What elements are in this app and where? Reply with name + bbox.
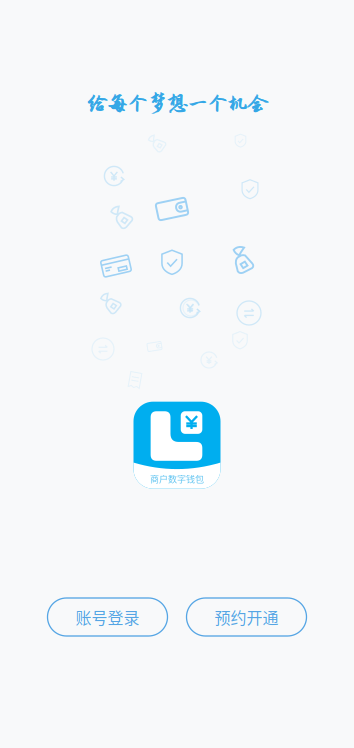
staticText: 账号登录	[75, 605, 139, 629]
button[interactable]: 账号登录	[47, 598, 167, 636]
staticText: 预约开通	[214, 605, 278, 629]
staticText: 商户数字钱包	[150, 472, 204, 485]
button[interactable]: 预约开通	[186, 598, 306, 636]
staticText: 给每个梦想一个机会	[87, 92, 267, 115]
staticText: 给每个梦想一个机会	[88, 92, 268, 115]
